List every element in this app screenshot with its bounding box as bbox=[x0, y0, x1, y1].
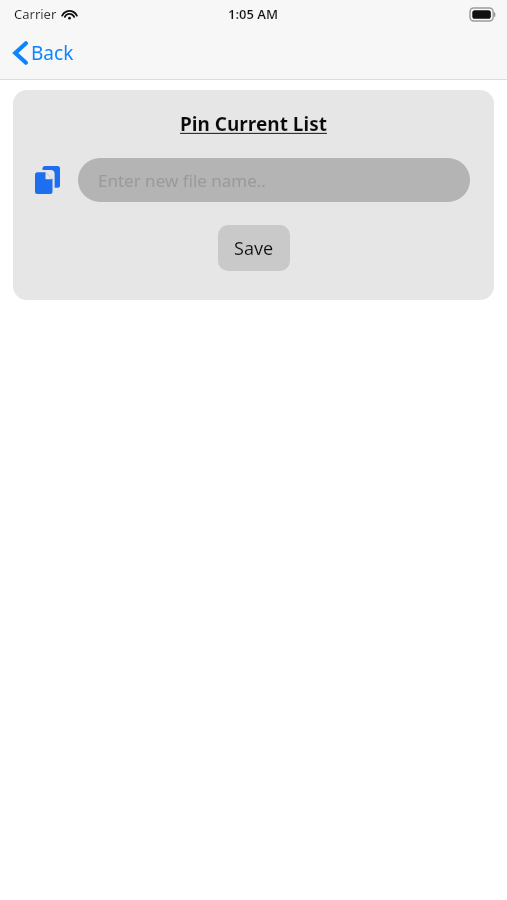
staticText: Enter new file name.. bbox=[98, 169, 266, 192]
staticText: Carrier bbox=[14, 5, 57, 23]
staticText: Back bbox=[31, 40, 74, 66]
button[interactable]: Enter new file name.. bbox=[78, 158, 470, 202]
staticText: Save bbox=[234, 236, 274, 261]
staticText: Pin Current List bbox=[180, 111, 327, 137]
button[interactable]: Save bbox=[218, 225, 290, 271]
button[interactable]: Back bbox=[10, 37, 78, 69]
staticText: 1:05 AM bbox=[228, 5, 279, 23]
button[interactable]: Copy document bbox=[29, 162, 65, 198]
